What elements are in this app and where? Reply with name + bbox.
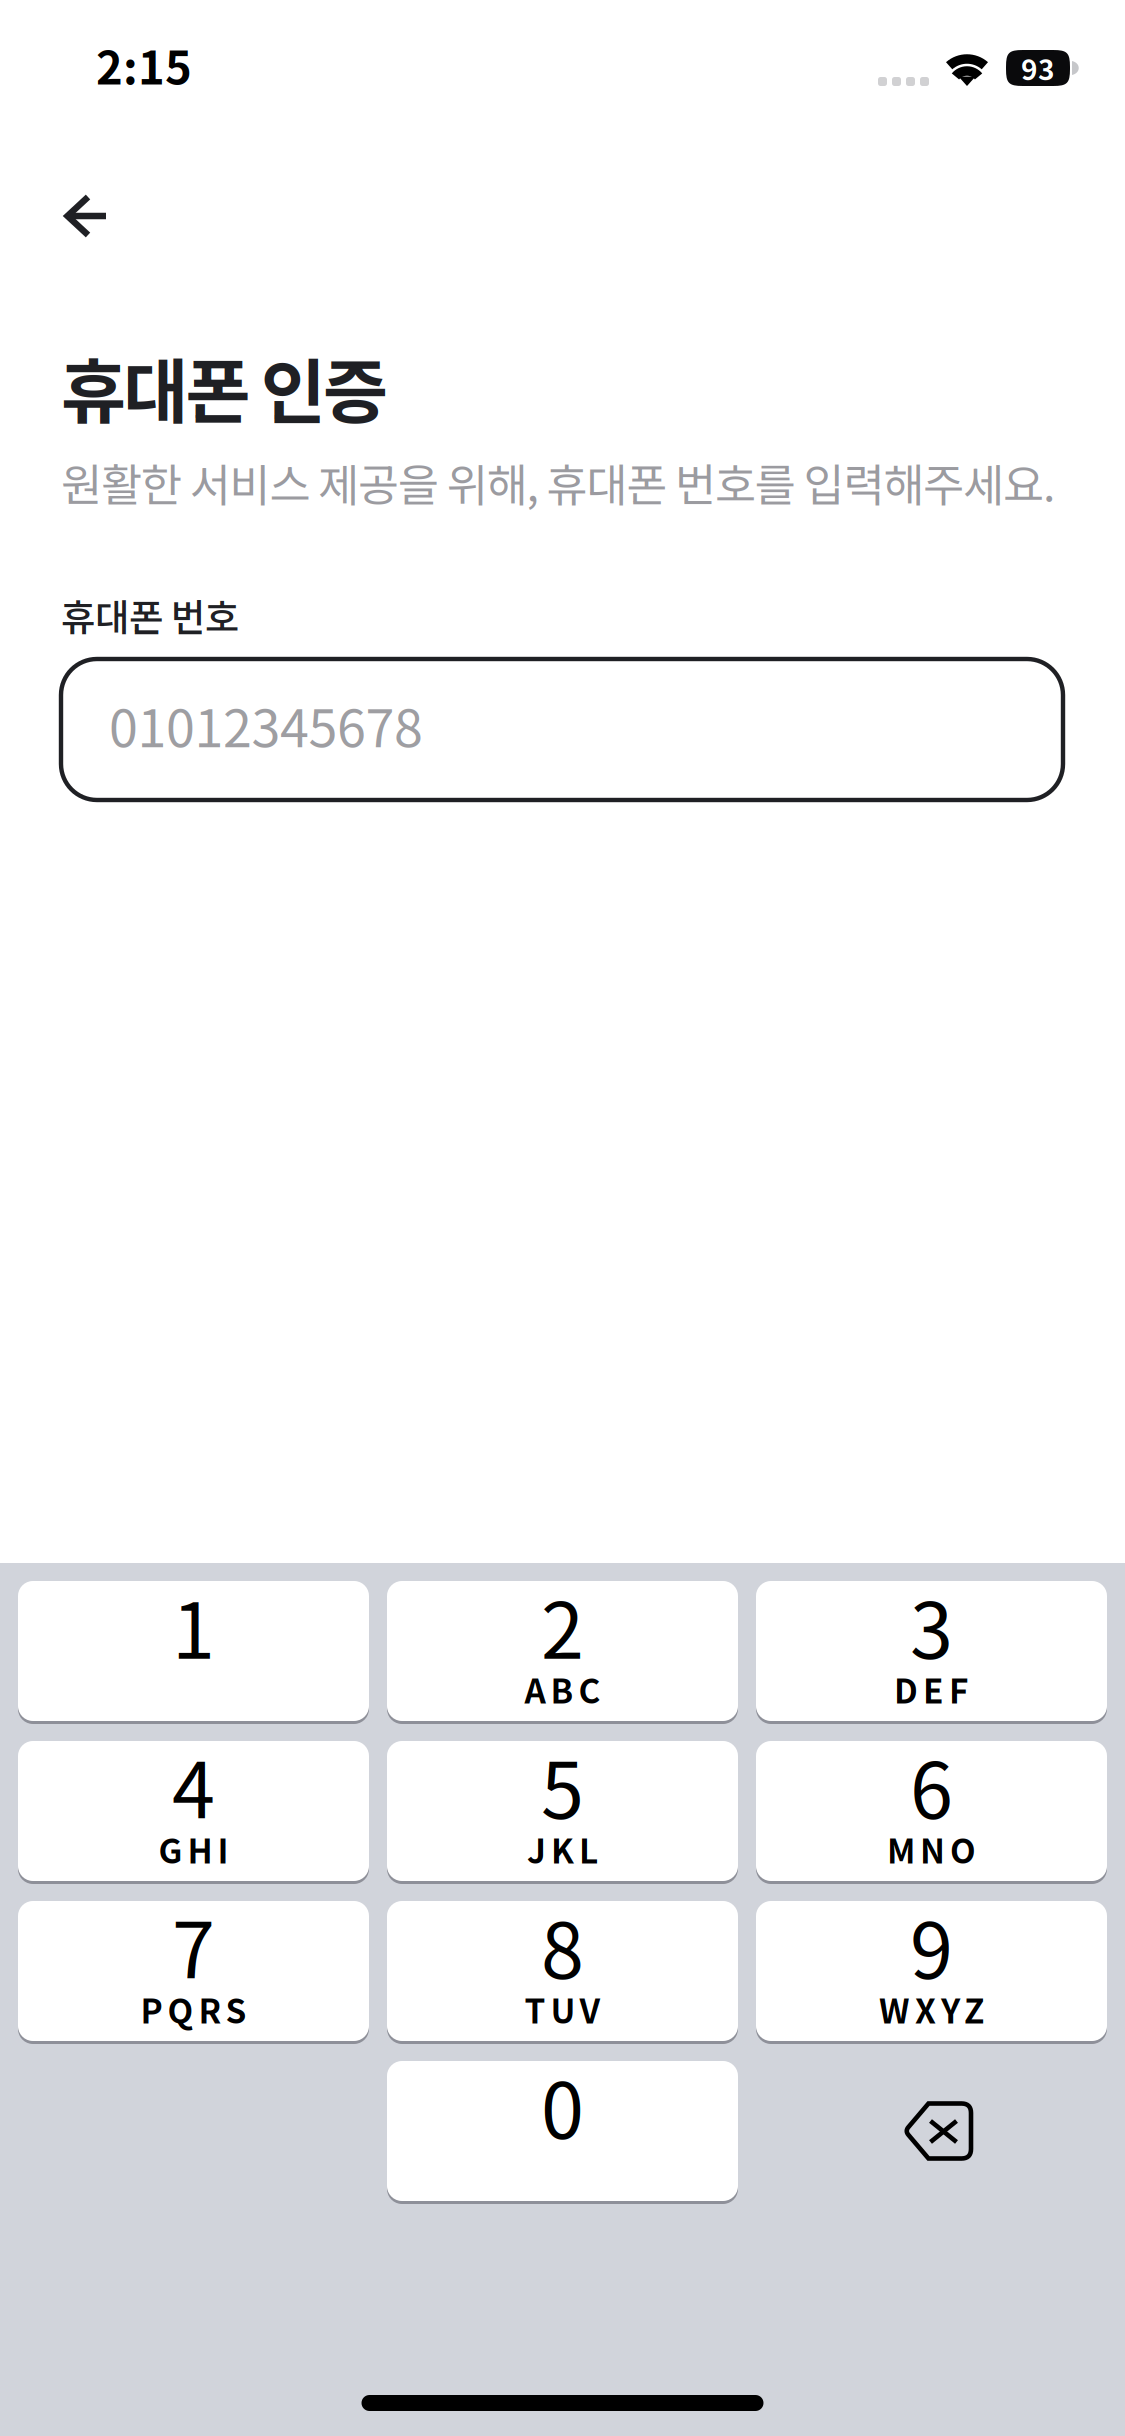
- staticText: 3: [910, 1569, 953, 1681]
- button[interactable]: 8: [387, 1901, 738, 2041]
- button[interactable]: 6: [756, 1741, 1107, 1881]
- button[interactable]: 2: [387, 1581, 738, 1721]
- staticText: 93: [1021, 48, 1055, 88]
- staticText: WXYZ: [879, 1985, 984, 2033]
- staticText: GHI: [158, 1825, 228, 1873]
- staticText: 5: [541, 1729, 584, 1841]
- staticText: 2:15: [96, 32, 192, 98]
- staticText: 7: [172, 1889, 215, 2001]
- staticText: 01012345678: [109, 687, 423, 762]
- button[interactable]: 9: [756, 1901, 1107, 2041]
- button[interactable]: Delete: [756, 2061, 1107, 2201]
- staticText: 6: [910, 1729, 953, 1841]
- staticText: MNO: [887, 1825, 976, 1873]
- button[interactable]: 0: [387, 2061, 738, 2201]
- staticText: 휴대폰 번호: [61, 588, 239, 642]
- button[interactable]: 5: [387, 1741, 738, 1881]
- staticText: 9: [910, 1889, 953, 2001]
- staticText: PQRS: [140, 1985, 246, 2033]
- staticText: 8: [541, 1889, 584, 2001]
- staticText: DEF: [894, 1665, 969, 1713]
- staticText: 0: [541, 2049, 584, 2161]
- button[interactable]: 3: [756, 1581, 1107, 1721]
- staticText: 원활한 서비스 제공을 위해, 휴대폰 번호를 입력해주세요.: [61, 450, 1055, 514]
- button[interactable]: Back: [38, 168, 136, 264]
- staticText: 1: [172, 1569, 215, 1681]
- button[interactable]: 1: [18, 1581, 369, 1721]
- button[interactable]: 01012345678: [61, 659, 1063, 800]
- staticText: 4: [172, 1729, 215, 1841]
- staticText: 2: [541, 1569, 584, 1681]
- staticText: JKL: [527, 1825, 598, 1873]
- staticText: ABC: [524, 1665, 600, 1713]
- button[interactable]: 7: [18, 1901, 369, 2041]
- button[interactable]: 4: [18, 1741, 369, 1881]
- staticText: TUV: [524, 1985, 600, 2033]
- staticText: 휴대폰 인증: [61, 336, 388, 438]
